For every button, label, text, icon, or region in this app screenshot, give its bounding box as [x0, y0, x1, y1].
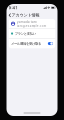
button[interactable]: Email notifications — [48, 42, 53, 45]
staticText: yamada taro — [17, 20, 37, 24]
button[interactable]: プランと支払い — [9, 29, 55, 38]
staticText: taro@example.com — [17, 24, 46, 28]
button[interactable]: yamada taro — [9, 19, 55, 28]
button[interactable]: Back — [8, 12, 12, 18]
staticText: プランと支払い — [15, 32, 36, 36]
staticText: アカウント情報 — [12, 12, 40, 18]
staticText: メール通知を受け取る — [11, 41, 41, 46]
staticText: 9:41 — [8, 5, 17, 10]
